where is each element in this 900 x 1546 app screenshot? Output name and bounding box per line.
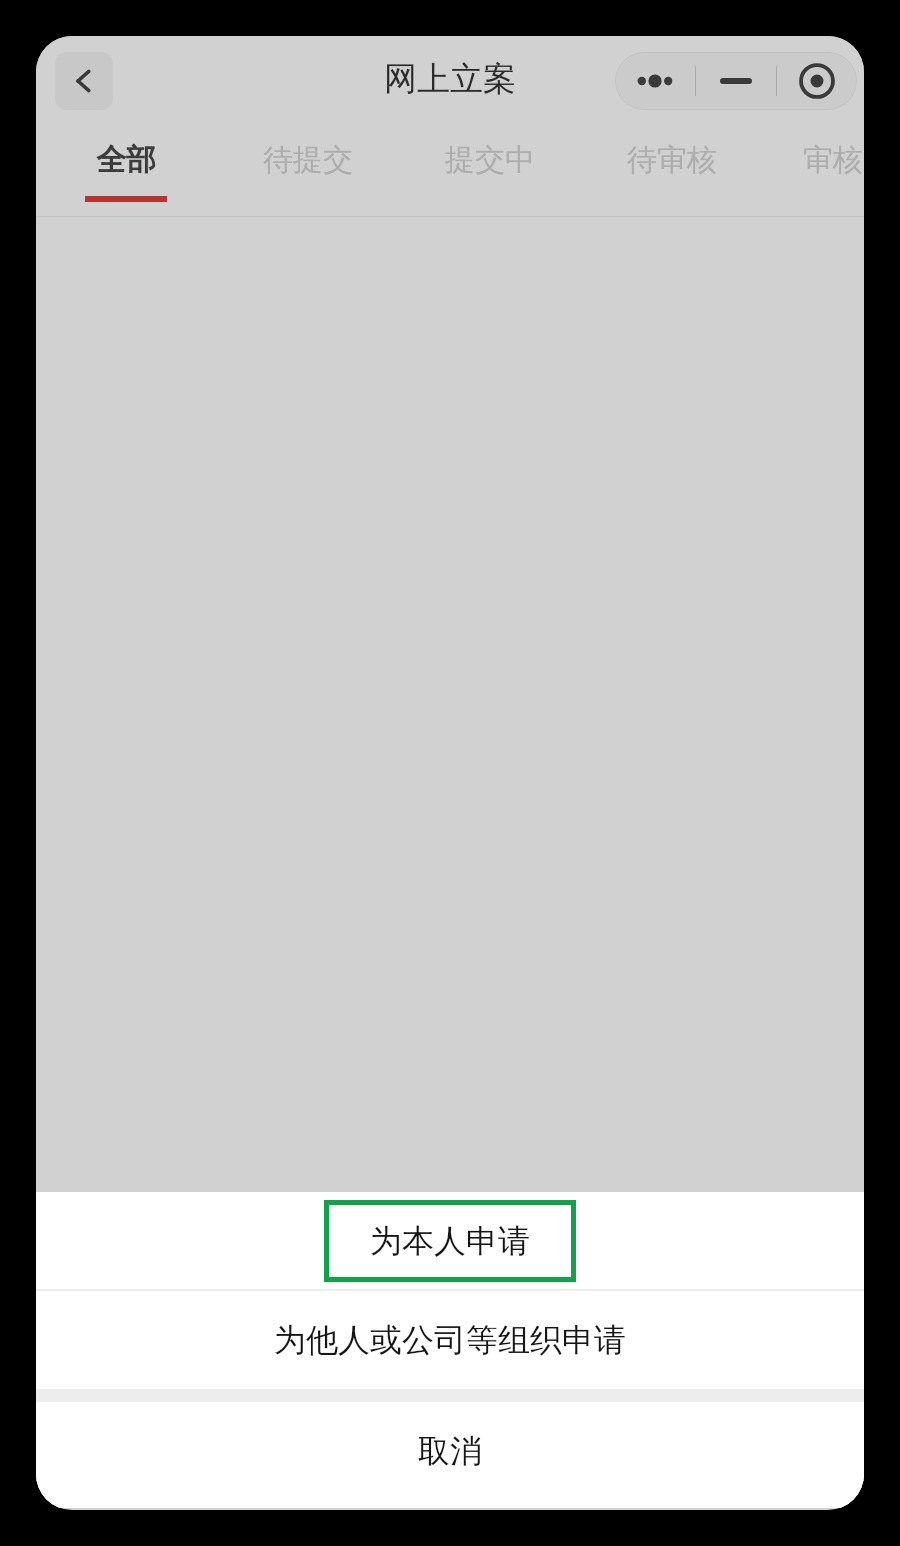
staticText: 待审核 bbox=[627, 141, 717, 179]
staticText: 全部 bbox=[96, 141, 156, 179]
button[interactable]: 取消 bbox=[36, 1402, 864, 1500]
button[interactable]: Close bbox=[777, 52, 856, 110]
button[interactable]: 为他人或公司等组织申请 bbox=[36, 1291, 864, 1389]
staticText: 提交中 bbox=[445, 141, 535, 179]
button[interactable]: Minimize bbox=[696, 52, 776, 110]
staticText: 待提交 bbox=[263, 141, 353, 179]
staticText: 为他人或公司等组织申请 bbox=[274, 1320, 626, 1360]
button[interactable]: 提交中 bbox=[410, 125, 570, 216]
staticText: 网上立案 bbox=[384, 58, 516, 100]
button[interactable]: 待审核 bbox=[592, 125, 752, 216]
button[interactable]: 为本人申请 bbox=[36, 1192, 864, 1289]
button[interactable]: 全部 bbox=[46, 125, 206, 216]
button[interactable]: Back bbox=[55, 52, 113, 110]
staticText: 为本人申请 bbox=[370, 1221, 530, 1261]
button[interactable]: 审核通 bbox=[768, 125, 864, 216]
button[interactable]: 待提交 bbox=[228, 125, 388, 216]
button[interactable]: Menu bbox=[615, 52, 695, 110]
staticText: 审核通 bbox=[803, 141, 864, 179]
staticText: 取消 bbox=[418, 1431, 482, 1471]
